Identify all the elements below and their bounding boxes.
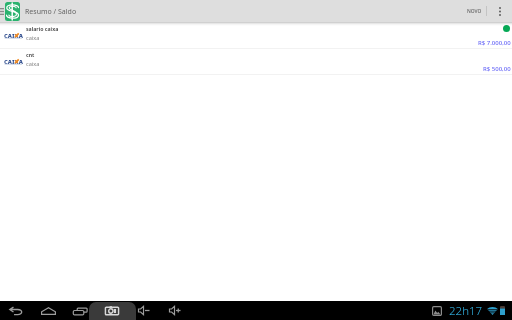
staticText: NOVO [467,8,482,15]
button[interactable]: Volume up [160,301,190,320]
button[interactable]: CAIXA [0,23,512,49]
staticText: cnt [26,51,35,58]
button[interactable]: Home [33,301,63,320]
button[interactable]: More options [487,0,512,22]
staticText: CAIXA [4,32,23,40]
button[interactable]: Volume down [127,301,160,320]
staticText: caixa [26,34,40,42]
button[interactable]: Screenshot [100,301,124,320]
staticText: caixa [26,60,40,68]
staticText: 22h17 [449,303,483,319]
button[interactable]: Open navigation drawer [0,0,20,22]
staticText: Resumo / Saldo [25,7,77,17]
button[interactable]: CAIXA [0,49,512,75]
staticText: R$ 7.000,00 [478,39,511,47]
staticText: R$ 500,00 [483,65,511,73]
button[interactable]: Back [1,301,31,320]
staticText: CAIXA [4,58,23,66]
staticText: salario caixa [26,25,59,32]
button[interactable]: NOVO [457,0,486,22]
button[interactable]: Recent apps [66,301,95,320]
